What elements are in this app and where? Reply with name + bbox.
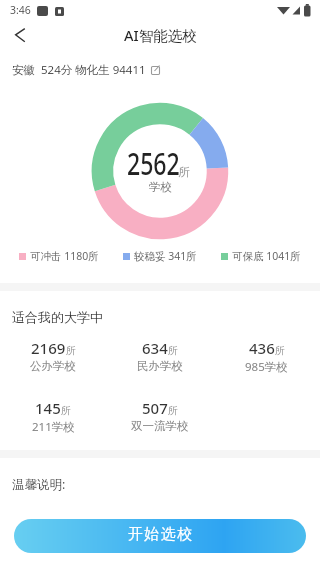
staticText: 民办学校	[137, 359, 183, 373]
staticText: 所	[168, 404, 178, 417]
staticText: 所	[178, 165, 190, 179]
staticText: 211学校	[32, 419, 75, 435]
staticText: 安徽 524分 物化生 94411	[12, 62, 146, 78]
staticText: 所	[168, 344, 178, 357]
staticText: 温馨说明:	[12, 476, 66, 493]
staticText: 436	[249, 338, 275, 358]
staticText: 学校	[149, 180, 172, 194]
button[interactable]: 436	[213, 338, 320, 375]
staticText: 适合我的大学中	[12, 309, 103, 325]
staticText: 145	[35, 398, 61, 418]
button[interactable]: 开始选校	[14, 519, 306, 553]
staticText: 可保底 1041所	[232, 249, 301, 263]
staticText: 3:46	[10, 3, 31, 17]
button[interactable]: 145	[0, 398, 106, 435]
button[interactable]: 安徽 524分 物化生 94411	[12, 62, 161, 78]
button[interactable]: 较稳妥 341所	[123, 249, 197, 263]
button[interactable]	[6, 24, 30, 48]
staticText: 507	[142, 398, 168, 418]
button[interactable]: 634	[106, 338, 213, 373]
staticText: 所	[66, 344, 76, 357]
button[interactable]: 可冲击 1180所	[19, 249, 99, 263]
staticText: 所	[275, 344, 285, 357]
staticText: 双一流学校	[131, 419, 189, 433]
staticText: 634	[142, 338, 168, 358]
staticText: 较稳妥 341所	[134, 249, 197, 263]
staticText: 2169	[31, 338, 66, 358]
staticText: 开始选校	[127, 525, 193, 544]
button[interactable]: 507	[106, 398, 213, 433]
button[interactable]: 2169	[0, 338, 106, 373]
staticText: AI智能选校	[124, 25, 197, 45]
staticText: 985学校	[245, 359, 288, 375]
button[interactable]: 可保底 1041所	[221, 249, 301, 263]
staticText: 所	[61, 404, 71, 417]
staticText: 2562	[127, 143, 180, 184]
staticText: 公办学校	[30, 359, 76, 373]
staticText: 可冲击 1180所	[30, 249, 99, 263]
